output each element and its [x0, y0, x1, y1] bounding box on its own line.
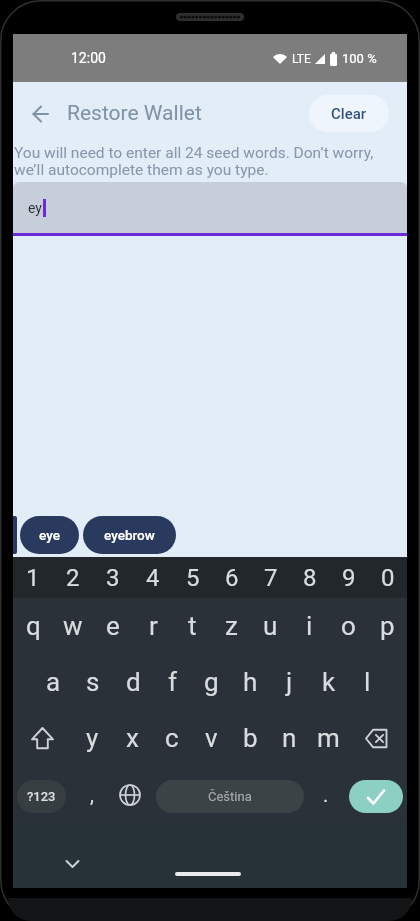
button[interactable]: ?123 [17, 780, 66, 813]
staticText: ey [28, 200, 42, 216]
button[interactable]: e [93, 598, 133, 654]
button[interactable]: 9 [329, 557, 368, 598]
staticText: 4 [146, 564, 160, 592]
staticText: ?123 [27, 789, 56, 804]
staticText: q [26, 611, 41, 641]
staticText: k [322, 667, 336, 697]
button[interactable]: 7 [251, 557, 290, 598]
staticText: p [380, 611, 395, 641]
staticText: LTE [292, 52, 311, 66]
staticText: Čeština [208, 789, 252, 804]
staticText: eyebrow [104, 527, 155, 543]
staticText: o [341, 611, 356, 641]
button[interactable]: r [133, 598, 173, 654]
button[interactable]: eyebrow [83, 516, 176, 554]
button[interactable]: i [290, 598, 329, 654]
button[interactable] [116, 781, 144, 809]
button[interactable]: o [329, 598, 368, 654]
button[interactable]: 4 [133, 557, 173, 598]
staticText: Restore Wallet [67, 101, 202, 126]
staticText: t [188, 611, 197, 641]
staticText: 5 [186, 564, 200, 592]
button[interactable]: eye [20, 516, 79, 554]
button[interactable]: s [73, 654, 113, 710]
staticText: v [205, 723, 218, 753]
button[interactable] [349, 780, 403, 813]
button[interactable]: k [309, 654, 348, 710]
staticText: Clear [331, 105, 367, 123]
button[interactable] [348, 710, 407, 766]
staticText: , [90, 783, 94, 806]
staticText: f [168, 667, 178, 697]
button[interactable] [29, 102, 53, 126]
staticText: 8 [303, 564, 317, 592]
button[interactable]: , [78, 768, 106, 820]
staticText: w [63, 611, 83, 641]
staticText: s [86, 667, 100, 697]
staticText: 2 [66, 564, 80, 592]
button[interactable] [60, 854, 84, 874]
staticText: j [286, 667, 293, 697]
button[interactable]: v [192, 710, 231, 766]
staticText: c [165, 723, 179, 753]
staticText: . [323, 783, 329, 806]
button[interactable]: x [112, 710, 152, 766]
staticText: 12:00 [71, 50, 106, 66]
button[interactable]: d [113, 654, 153, 710]
button[interactable]: h [231, 654, 270, 710]
staticText: h [243, 667, 258, 697]
button[interactable]: u [251, 598, 290, 654]
button[interactable]: . [312, 768, 340, 820]
button[interactable]: 5 [173, 557, 212, 598]
staticText: r [149, 611, 158, 641]
staticText: You will need to enter all 24 seed words… [14, 144, 374, 178]
staticText: y [86, 723, 99, 753]
button[interactable]: n [270, 710, 309, 766]
button[interactable]: m [309, 710, 348, 766]
staticText: n [282, 723, 297, 753]
staticText: 6 [225, 564, 239, 592]
button[interactable]: 2 [53, 557, 93, 598]
staticText: l [364, 667, 371, 697]
button[interactable]: y [72, 710, 112, 766]
staticText: a [46, 667, 61, 697]
button[interactable]: 0 [368, 557, 407, 598]
staticText: d [126, 667, 141, 697]
button[interactable]: p [368, 598, 407, 654]
button[interactable]: q [13, 598, 53, 654]
button[interactable]: w [53, 598, 93, 654]
staticText: g [204, 667, 219, 697]
staticText: b [243, 723, 258, 753]
button[interactable]: ey [13, 182, 407, 233]
button[interactable]: c [152, 710, 192, 766]
button[interactable] [13, 710, 72, 766]
staticText: eye [39, 527, 60, 543]
button[interactable]: l [348, 654, 387, 710]
button[interactable]: a [33, 654, 73, 710]
button[interactable]: Clear [309, 95, 389, 132]
button[interactable]: g [192, 654, 231, 710]
staticText: e [106, 611, 120, 641]
staticText: z [225, 611, 238, 641]
button[interactable]: t [173, 598, 212, 654]
button[interactable]: 1 [13, 557, 53, 598]
staticText: 7 [264, 564, 278, 592]
staticText: m [317, 723, 340, 753]
staticText: i [306, 611, 313, 641]
staticText: 3 [106, 564, 120, 592]
button[interactable]: 6 [212, 557, 251, 598]
button[interactable]: 3 [93, 557, 133, 598]
staticText: 0 [381, 564, 395, 592]
button[interactable]: b [231, 710, 270, 766]
button[interactable]: Čeština [156, 780, 304, 813]
staticText: 100 % [342, 51, 377, 66]
button[interactable]: j [270, 654, 309, 710]
staticText: 9 [342, 564, 356, 592]
staticText: u [263, 611, 278, 641]
staticText: x [126, 723, 139, 753]
staticText: 1 [26, 564, 40, 592]
button[interactable]: f [153, 654, 192, 710]
button[interactable]: 8 [290, 557, 329, 598]
button[interactable]: z [212, 598, 251, 654]
